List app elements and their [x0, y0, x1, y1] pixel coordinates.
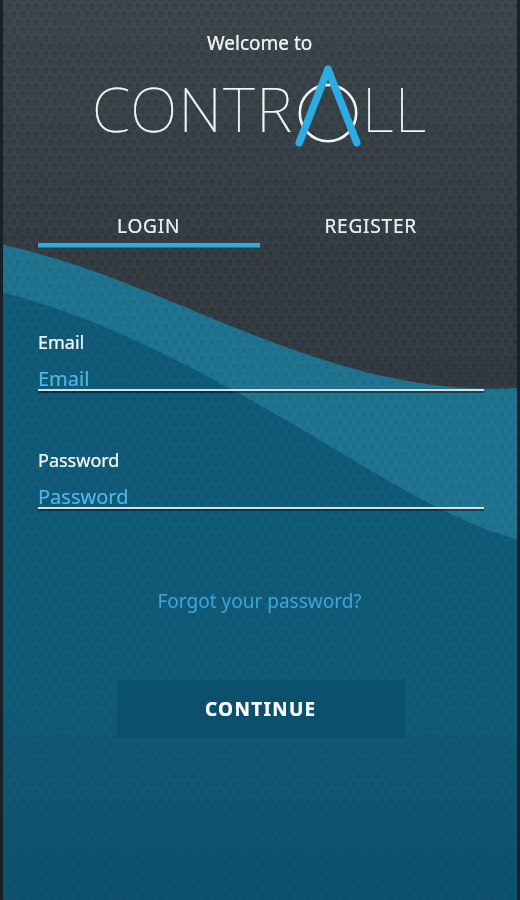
button[interactable]: CONTINUE — [117, 680, 405, 738]
button[interactable]: LOGIN tab — [38, 200, 260, 252]
button[interactable]: Forgot your password — [140, 584, 380, 618]
button[interactable]: Email input field — [38, 358, 484, 396]
button[interactable]: REGISTER tab — [288, 200, 454, 252]
button[interactable]: Password input field — [38, 476, 484, 514]
